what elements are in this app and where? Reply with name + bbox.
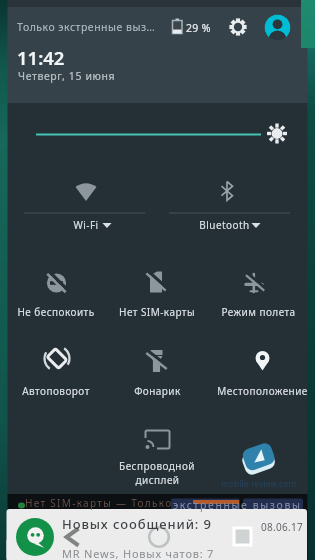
button[interactable] <box>168 172 290 234</box>
staticText: Не беспокоить <box>17 305 95 319</box>
staticText: Wi-Fi <box>73 218 99 232</box>
staticText: Автоповорот <box>22 384 90 398</box>
staticText: Четверг, 15 июня <box>18 69 116 83</box>
staticText: Режим полета <box>221 305 296 319</box>
button[interactable] <box>208 334 308 396</box>
staticText: Местоположение <box>217 384 308 398</box>
staticText: Фонарик <box>134 384 181 398</box>
button[interactable] <box>263 13 292 42</box>
staticText: экстренные вызовы <box>173 498 302 512</box>
staticText: Беспроводной <box>119 459 195 473</box>
button[interactable] <box>264 121 290 147</box>
staticText: Bluetooth <box>199 218 250 232</box>
staticText: mobile-review.com <box>221 478 297 490</box>
staticText: Нет SIM-карты — Только <box>25 496 173 510</box>
button[interactable] <box>7 258 107 320</box>
staticText: Новых сообщений: 9 <box>62 515 212 533</box>
button[interactable] <box>228 523 256 551</box>
staticText: дисплей <box>135 473 180 487</box>
staticText: 29 % <box>186 21 211 35</box>
button[interactable] <box>110 412 205 478</box>
staticText: 11:42 <box>17 45 65 70</box>
button[interactable] <box>58 523 86 551</box>
staticText: 08.06.17 <box>261 520 304 534</box>
button[interactable] <box>208 258 308 320</box>
button[interactable] <box>26 172 146 234</box>
button[interactable] <box>145 523 173 551</box>
staticText: Только экстренные выз… <box>17 20 156 34</box>
button[interactable] <box>7 334 107 396</box>
button[interactable] <box>107 258 207 320</box>
button[interactable] <box>107 334 207 396</box>
button[interactable] <box>7 509 308 560</box>
staticText: Нет SIM-карты <box>119 305 195 319</box>
staticText: MR News, Новых чатов: 7 <box>62 546 215 560</box>
button[interactable] <box>228 16 250 38</box>
